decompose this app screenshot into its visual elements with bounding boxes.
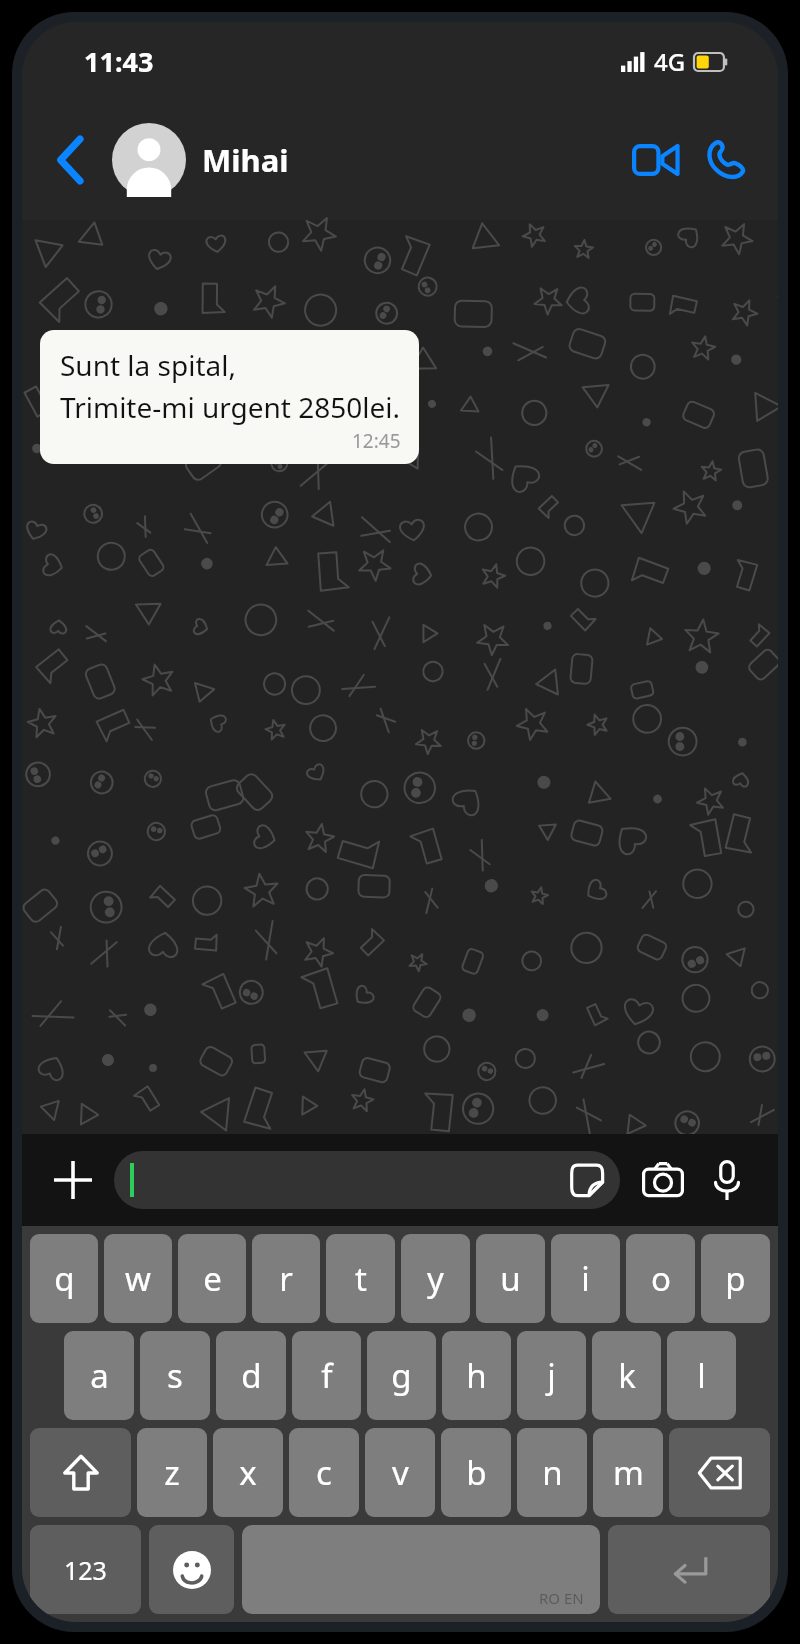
button[interactable]: x — [213, 1428, 283, 1517]
staticText: Trimite-mi urgent 2850lei. — [60, 388, 401, 426]
button[interactable]: k — [592, 1331, 661, 1420]
button[interactable]: f — [292, 1331, 361, 1420]
button[interactable]: Voice message — [698, 1151, 756, 1209]
staticText: q — [54, 1256, 75, 1301]
button[interactable]: m — [593, 1428, 663, 1517]
other: Emoji — [173, 1551, 211, 1589]
staticText: b — [466, 1450, 487, 1495]
staticText: Sunt la spital, — [60, 346, 236, 384]
staticText: s — [167, 1353, 183, 1398]
staticText: m — [613, 1450, 644, 1495]
staticText: c — [316, 1450, 332, 1495]
button[interactable]: Attach — [44, 1151, 102, 1209]
staticText: j — [547, 1353, 556, 1398]
staticText: o — [651, 1256, 671, 1301]
staticText: 123 — [64, 1553, 107, 1587]
button[interactable]: w — [104, 1234, 172, 1323]
button[interactable]: d — [216, 1331, 286, 1420]
button[interactable]: Camera — [634, 1151, 692, 1209]
button[interactable]: t — [326, 1234, 395, 1323]
staticText: n — [542, 1450, 563, 1495]
button[interactable]: a — [64, 1331, 134, 1420]
button[interactable]: y — [401, 1234, 470, 1323]
button[interactable] — [114, 1151, 620, 1209]
button[interactable]: Backspace — [669, 1428, 770, 1517]
button[interactable]: h — [442, 1331, 511, 1420]
staticText: t — [355, 1256, 367, 1301]
button[interactable]: v — [365, 1428, 435, 1517]
staticText: v — [392, 1450, 409, 1495]
button[interactable]: q — [30, 1234, 98, 1323]
staticText: x — [239, 1450, 257, 1495]
button[interactable]: RO EN — [242, 1525, 600, 1614]
button[interactable]: Sunt la spital, — [40, 330, 419, 464]
button[interactable]: j — [517, 1331, 586, 1420]
staticText: RO EN — [539, 1588, 584, 1608]
staticText: z — [164, 1450, 180, 1495]
button[interactable]: i — [551, 1234, 620, 1323]
button[interactable]: c — [289, 1428, 359, 1517]
button[interactable]: p — [701, 1234, 770, 1323]
staticText: d — [241, 1353, 262, 1398]
button[interactable]: Voice call — [694, 129, 756, 191]
button[interactable]: z — [137, 1428, 207, 1517]
button[interactable]: u — [476, 1234, 545, 1323]
button[interactable]: g — [367, 1331, 436, 1420]
staticText: h — [466, 1353, 487, 1398]
button[interactable]: o — [626, 1234, 695, 1323]
staticText: 12:45 — [352, 428, 401, 454]
button[interactable]: s — [140, 1331, 210, 1420]
staticText: r — [279, 1256, 293, 1301]
staticText: y — [427, 1256, 444, 1301]
button[interactable]: Video call — [624, 129, 686, 191]
staticText: 11:43 — [84, 43, 154, 80]
staticText: w — [125, 1256, 151, 1301]
button[interactable]: b — [441, 1428, 511, 1517]
staticText: l — [697, 1353, 706, 1398]
other: Shift — [63, 1454, 99, 1492]
button[interactable]: Enter — [608, 1525, 770, 1614]
staticText: e — [203, 1256, 222, 1301]
staticText: g — [391, 1353, 412, 1398]
staticText: f — [321, 1353, 333, 1398]
button[interactable]: Back — [44, 133, 98, 187]
button[interactable]: r — [252, 1234, 320, 1323]
button[interactable]: 123 — [30, 1525, 141, 1614]
staticText: u — [500, 1256, 521, 1301]
staticText: Mihai — [202, 139, 289, 181]
staticText: a — [90, 1353, 109, 1398]
button[interactable]: l — [667, 1331, 736, 1420]
staticText: i — [581, 1256, 590, 1301]
other: Enter — [669, 1554, 709, 1586]
button[interactable]: Mihai — [112, 123, 289, 197]
other: Backspace — [698, 1456, 742, 1490]
staticText: 4G — [654, 45, 686, 78]
button[interactable]: e — [178, 1234, 246, 1323]
button[interactable]: Emoji — [149, 1525, 234, 1614]
staticText: p — [725, 1256, 746, 1301]
button[interactable]: n — [517, 1428, 587, 1517]
button[interactable]: Shift — [30, 1428, 131, 1517]
staticText: k — [618, 1353, 636, 1398]
